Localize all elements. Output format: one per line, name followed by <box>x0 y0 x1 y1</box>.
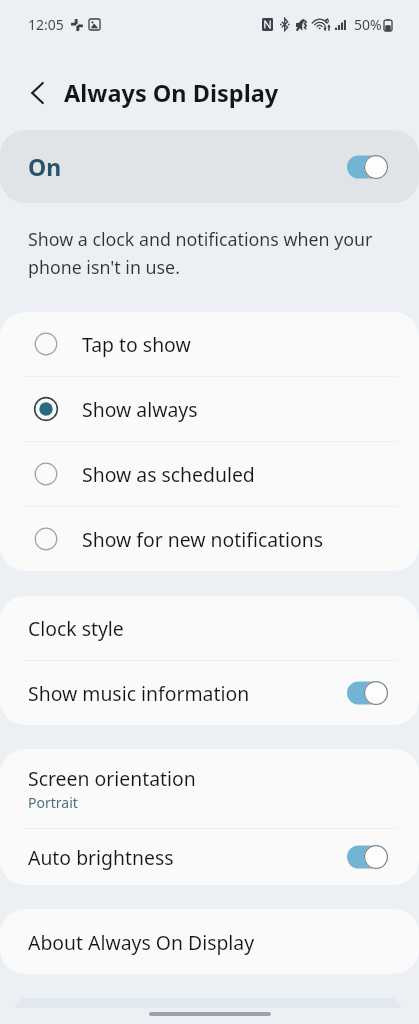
button[interactable]: Show music information <box>0 661 419 725</box>
button[interactable]: Back <box>16 71 60 115</box>
staticText: Show for new notifications <box>82 526 324 552</box>
staticText: Auto brightness <box>28 844 174 870</box>
staticText: Show always <box>82 396 198 422</box>
staticText: Clock style <box>28 615 124 641</box>
button[interactable]: Auto brightness <box>0 829 419 885</box>
button[interactable]: Toggle <box>347 154 388 180</box>
button[interactable]: Clock style <box>0 596 419 660</box>
button[interactable]: Toggle <box>347 680 388 706</box>
button[interactable]: Toggle <box>347 844 388 870</box>
staticText: Tap to show <box>82 331 191 357</box>
button[interactable]: Screen orientation <box>0 749 419 828</box>
button[interactable]: Show for new notifications <box>0 507 419 571</box>
staticText: About Always On Display <box>28 929 255 955</box>
staticText: On <box>28 151 62 182</box>
staticText: Show as scheduled <box>82 461 255 487</box>
staticText: Portrait <box>28 793 78 812</box>
button[interactable]: Show as scheduled <box>0 442 419 506</box>
staticText: Always On Display <box>64 77 279 109</box>
staticText: Screen orientation <box>28 765 196 791</box>
button[interactable]: Tap to show <box>0 312 419 376</box>
staticText: 50% <box>354 15 382 34</box>
button[interactable]: Show always <box>0 377 419 441</box>
button[interactable]: About Always On Display <box>0 909 419 974</box>
button[interactable]: On <box>0 130 419 203</box>
staticText: Show music information <box>28 680 250 706</box>
staticText: Show a clock and notifications when your… <box>28 227 373 280</box>
staticText: 12:05 <box>28 15 64 34</box>
